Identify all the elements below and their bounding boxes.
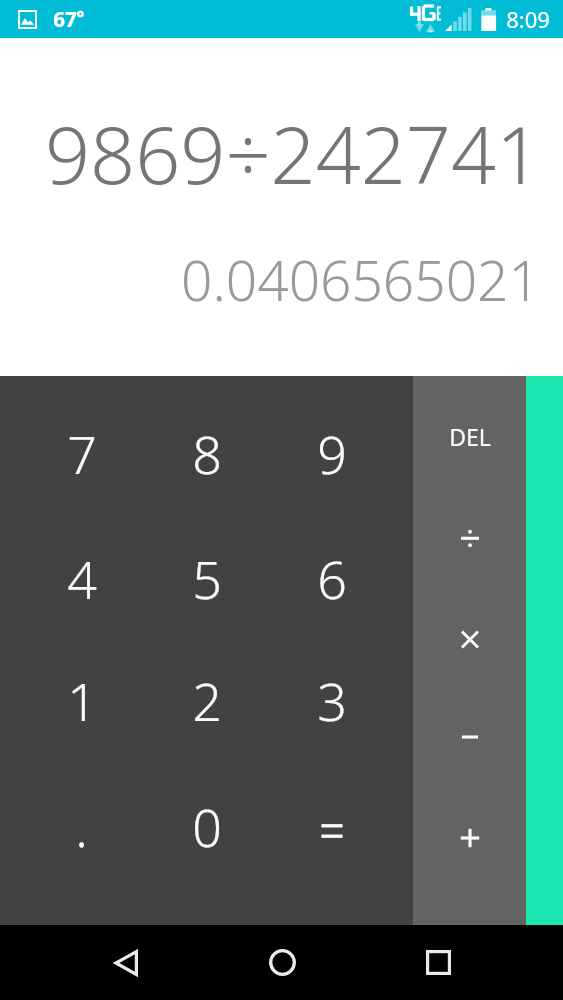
button[interactable]: DEL [413,376,526,485]
staticText: 0 [192,791,222,862]
staticText: 1 [67,665,97,736]
staticText: 4 [67,543,97,614]
staticText: 8:09 [506,4,550,34]
button[interactable]: Divide [413,485,526,595]
button[interactable]: . [0,788,137,925]
button[interactable]: Recents [360,925,516,1000]
button[interactable]: 1 [0,651,137,788]
staticText: 5 [192,543,222,614]
staticText: . [75,791,88,862]
button[interactable]: 3 [275,651,413,788]
button[interactable]: Multiply [413,595,526,705]
staticText: 2 [192,665,222,736]
staticText: 0.0406565021 [181,242,540,317]
staticText: DEL [449,421,491,452]
button[interactable]: 7 [0,376,137,514]
button[interactable] [275,788,413,925]
button[interactable]: 8 [137,376,275,514]
staticText: 9869÷242741 [45,100,542,208]
staticText: 67 [53,5,77,33]
button[interactable]: Back [47,925,204,1000]
button[interactable]: 6 [275,514,413,651]
button[interactable]: Home [204,925,360,1000]
staticText: 6 [317,543,347,614]
button[interactable]: 4 [0,514,137,651]
staticText: 7 [67,418,97,489]
button[interactable]: 2 [137,651,275,788]
staticText: 9 [317,418,347,489]
button[interactable]: Minus [413,705,526,815]
staticText: 3 [317,665,347,736]
staticText: 8 [192,418,222,489]
button[interactable]: 9 [275,376,413,514]
button[interactable]: 0 [137,788,275,925]
button[interactable]: Plus [413,815,526,925]
button[interactable]: 5 [137,514,275,651]
